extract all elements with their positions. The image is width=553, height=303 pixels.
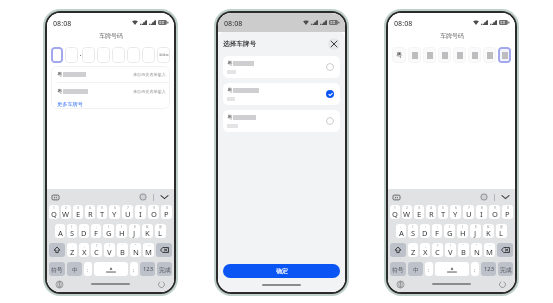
- button[interactable]: 粤: [223, 83, 340, 105]
- button[interactable]: Y: [450, 205, 461, 219]
- button[interactable]: Plate character: [483, 47, 496, 63]
- button[interactable]: P: [161, 205, 172, 219]
- button[interactable]: P: [502, 205, 513, 219]
- button[interactable]: Z: [67, 243, 77, 257]
- button[interactable]: U: [463, 205, 474, 219]
- button[interactable]: Plate character: [112, 47, 125, 63]
- button[interactable]: Language: [397, 281, 404, 288]
- button[interactable]: V: [445, 243, 456, 257]
- button[interactable]: V: [104, 243, 115, 257]
- button[interactable]: Shift: [390, 243, 406, 257]
- button[interactable]: ;: [130, 262, 138, 276]
- button[interactable]: F: [432, 224, 442, 238]
- button[interactable]: 符号: [390, 262, 406, 276]
- button[interactable]: 123: [481, 262, 496, 276]
- button[interactable]: 粤: [57, 83, 166, 99]
- button[interactable]: O: [489, 205, 500, 219]
- button[interactable]: L: [155, 224, 166, 238]
- button[interactable]: :: [425, 262, 433, 276]
- button[interactable]: N: [471, 243, 482, 257]
- button[interactable]: 符号: [49, 262, 65, 276]
- button[interactable]: Plate character: [468, 47, 481, 63]
- button[interactable]: Y: [109, 205, 120, 219]
- button[interactable]: 123: [140, 262, 155, 276]
- button[interactable]: Q: [49, 205, 59, 219]
- button[interactable]: Plate character: [127, 47, 140, 63]
- button[interactable]: T: [438, 205, 448, 219]
- button[interactable]: Undo: [499, 281, 506, 288]
- button[interactable]: B: [458, 243, 469, 257]
- button[interactable]: U: [122, 205, 133, 219]
- button[interactable]: Space: [94, 262, 128, 276]
- button[interactable]: I: [476, 205, 487, 219]
- button[interactable]: C: [432, 243, 443, 257]
- button[interactable]: 粤: [223, 110, 340, 132]
- button[interactable]: K: [142, 224, 153, 238]
- button[interactable]: N: [130, 243, 141, 257]
- button[interactable]: Plate character: [453, 47, 466, 63]
- button[interactable]: Hide keyboard: [501, 193, 509, 201]
- button[interactable]: X: [420, 243, 430, 257]
- button[interactable]: 粤: [57, 66, 166, 82]
- button[interactable]: Z: [408, 243, 418, 257]
- button[interactable]: 中: [408, 262, 423, 276]
- button[interactable]: A: [55, 224, 65, 238]
- button[interactable]: Clipboard: [393, 194, 400, 201]
- button[interactable]: Plate character: [65, 47, 78, 63]
- button[interactable]: O: [148, 205, 159, 219]
- button[interactable]: W: [402, 205, 412, 219]
- button[interactable]: W: [61, 205, 71, 219]
- button[interactable]: Plate character: [438, 47, 451, 63]
- button[interactable]: M: [143, 243, 154, 257]
- button[interactable]: C: [91, 243, 102, 257]
- button[interactable]: I: [135, 205, 146, 219]
- button[interactable]: Backspace: [156, 243, 172, 257]
- button[interactable]: 完成: [498, 262, 513, 276]
- button[interactable]: Language: [56, 281, 63, 288]
- button[interactable]: Emoji: [139, 193, 147, 201]
- button[interactable]: 中: [67, 262, 82, 276]
- button[interactable]: Hide keyboard: [160, 193, 168, 201]
- button[interactable]: R: [85, 205, 95, 219]
- button[interactable]: X: [79, 243, 89, 257]
- button[interactable]: M: [484, 243, 495, 257]
- button[interactable]: L: [496, 224, 507, 238]
- button[interactable]: Space: [435, 262, 469, 276]
- button[interactable]: Clipboard: [52, 194, 59, 201]
- button[interactable]: Plate character: [423, 47, 436, 63]
- button[interactable]: ;: [471, 262, 479, 276]
- button[interactable]: 更多车牌号: [57, 99, 170, 109]
- button[interactable]: :: [84, 262, 92, 276]
- button[interactable]: T: [97, 205, 107, 219]
- button[interactable]: H: [457, 224, 468, 238]
- button[interactable]: B: [117, 243, 128, 257]
- button[interactable]: F: [91, 224, 101, 238]
- button[interactable]: S: [408, 224, 418, 238]
- button[interactable]: R: [426, 205, 436, 219]
- button[interactable]: Backspace: [497, 243, 513, 257]
- button[interactable]: Emoji: [480, 193, 488, 201]
- button[interactable]: Undo: [158, 281, 165, 288]
- button[interactable]: Plate character: [97, 47, 110, 63]
- button[interactable]: H: [116, 224, 127, 238]
- button[interactable]: Plate character: [498, 47, 511, 63]
- button[interactable]: D: [420, 224, 430, 238]
- button[interactable]: 完成: [157, 262, 172, 276]
- button[interactable]: Q: [390, 205, 400, 219]
- button[interactable]: Close: [328, 38, 340, 50]
- button[interactable]: G: [444, 224, 455, 238]
- button[interactable]: E: [414, 205, 424, 219]
- button[interactable]: K: [483, 224, 494, 238]
- button[interactable]: 粤: [223, 56, 340, 78]
- button[interactable]: Plate character: [142, 47, 155, 63]
- button[interactable]: Shift: [49, 243, 65, 257]
- button[interactable]: J: [470, 224, 481, 238]
- button[interactable]: 确定: [223, 264, 340, 278]
- button[interactable]: Plate character: [408, 47, 421, 63]
- button[interactable]: Plate character: [392, 47, 406, 63]
- button[interactable]: A: [396, 224, 406, 238]
- button[interactable]: E: [73, 205, 83, 219]
- button[interactable]: S: [67, 224, 77, 238]
- button[interactable]: D: [79, 224, 89, 238]
- button[interactable]: G: [103, 224, 114, 238]
